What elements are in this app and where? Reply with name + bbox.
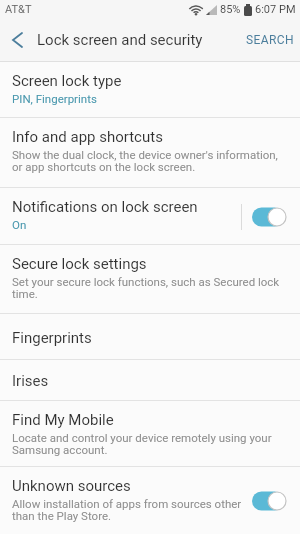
staticText: Notifications on lock screen	[12, 198, 198, 216]
staticText: Screen lock type	[12, 72, 122, 90]
staticText: Find My Mobile	[12, 411, 114, 429]
staticText: PIN, Fingerprints	[12, 92, 97, 105]
staticText: Fingerprints	[12, 329, 92, 347]
staticText: Unknown sources	[12, 477, 131, 495]
staticText: Lock screen and security	[37, 31, 203, 49]
button[interactable]: Notifications on lock screen	[0, 188, 300, 245]
button[interactable]	[5, 28, 29, 52]
staticText: Locate and control your device remotely …	[12, 431, 272, 457]
button[interactable]	[252, 491, 284, 511]
staticText: SEARCH	[246, 33, 294, 47]
button[interactable]: Fingerprints	[0, 314, 300, 360]
button[interactable]: Info and app shortcuts	[0, 118, 300, 188]
staticText: Secure lock settings	[12, 255, 147, 273]
staticText: 6:07 PM	[255, 3, 296, 16]
staticText: AT&T	[5, 3, 32, 16]
button[interactable]	[252, 207, 284, 227]
staticText: Show the dual clock, the device owner's …	[12, 148, 278, 174]
button[interactable]: Secure lock settings	[0, 245, 300, 314]
staticText: On	[12, 218, 27, 231]
staticText: Irises	[12, 372, 49, 390]
button[interactable]: Irises	[0, 360, 300, 401]
button[interactable]: Find My Mobile	[0, 401, 300, 467]
button[interactable]: Unknown sources	[0, 467, 300, 534]
button[interactable]: Screen lock type	[0, 62, 300, 118]
staticText: Set your secure lock functions, such as …	[12, 275, 280, 301]
staticText: Allow installation of apps from sources …	[12, 497, 242, 523]
staticText: Info and app shortcuts	[12, 128, 163, 146]
button[interactable]: SEARCH	[240, 25, 300, 55]
staticText: 85%	[220, 3, 241, 16]
